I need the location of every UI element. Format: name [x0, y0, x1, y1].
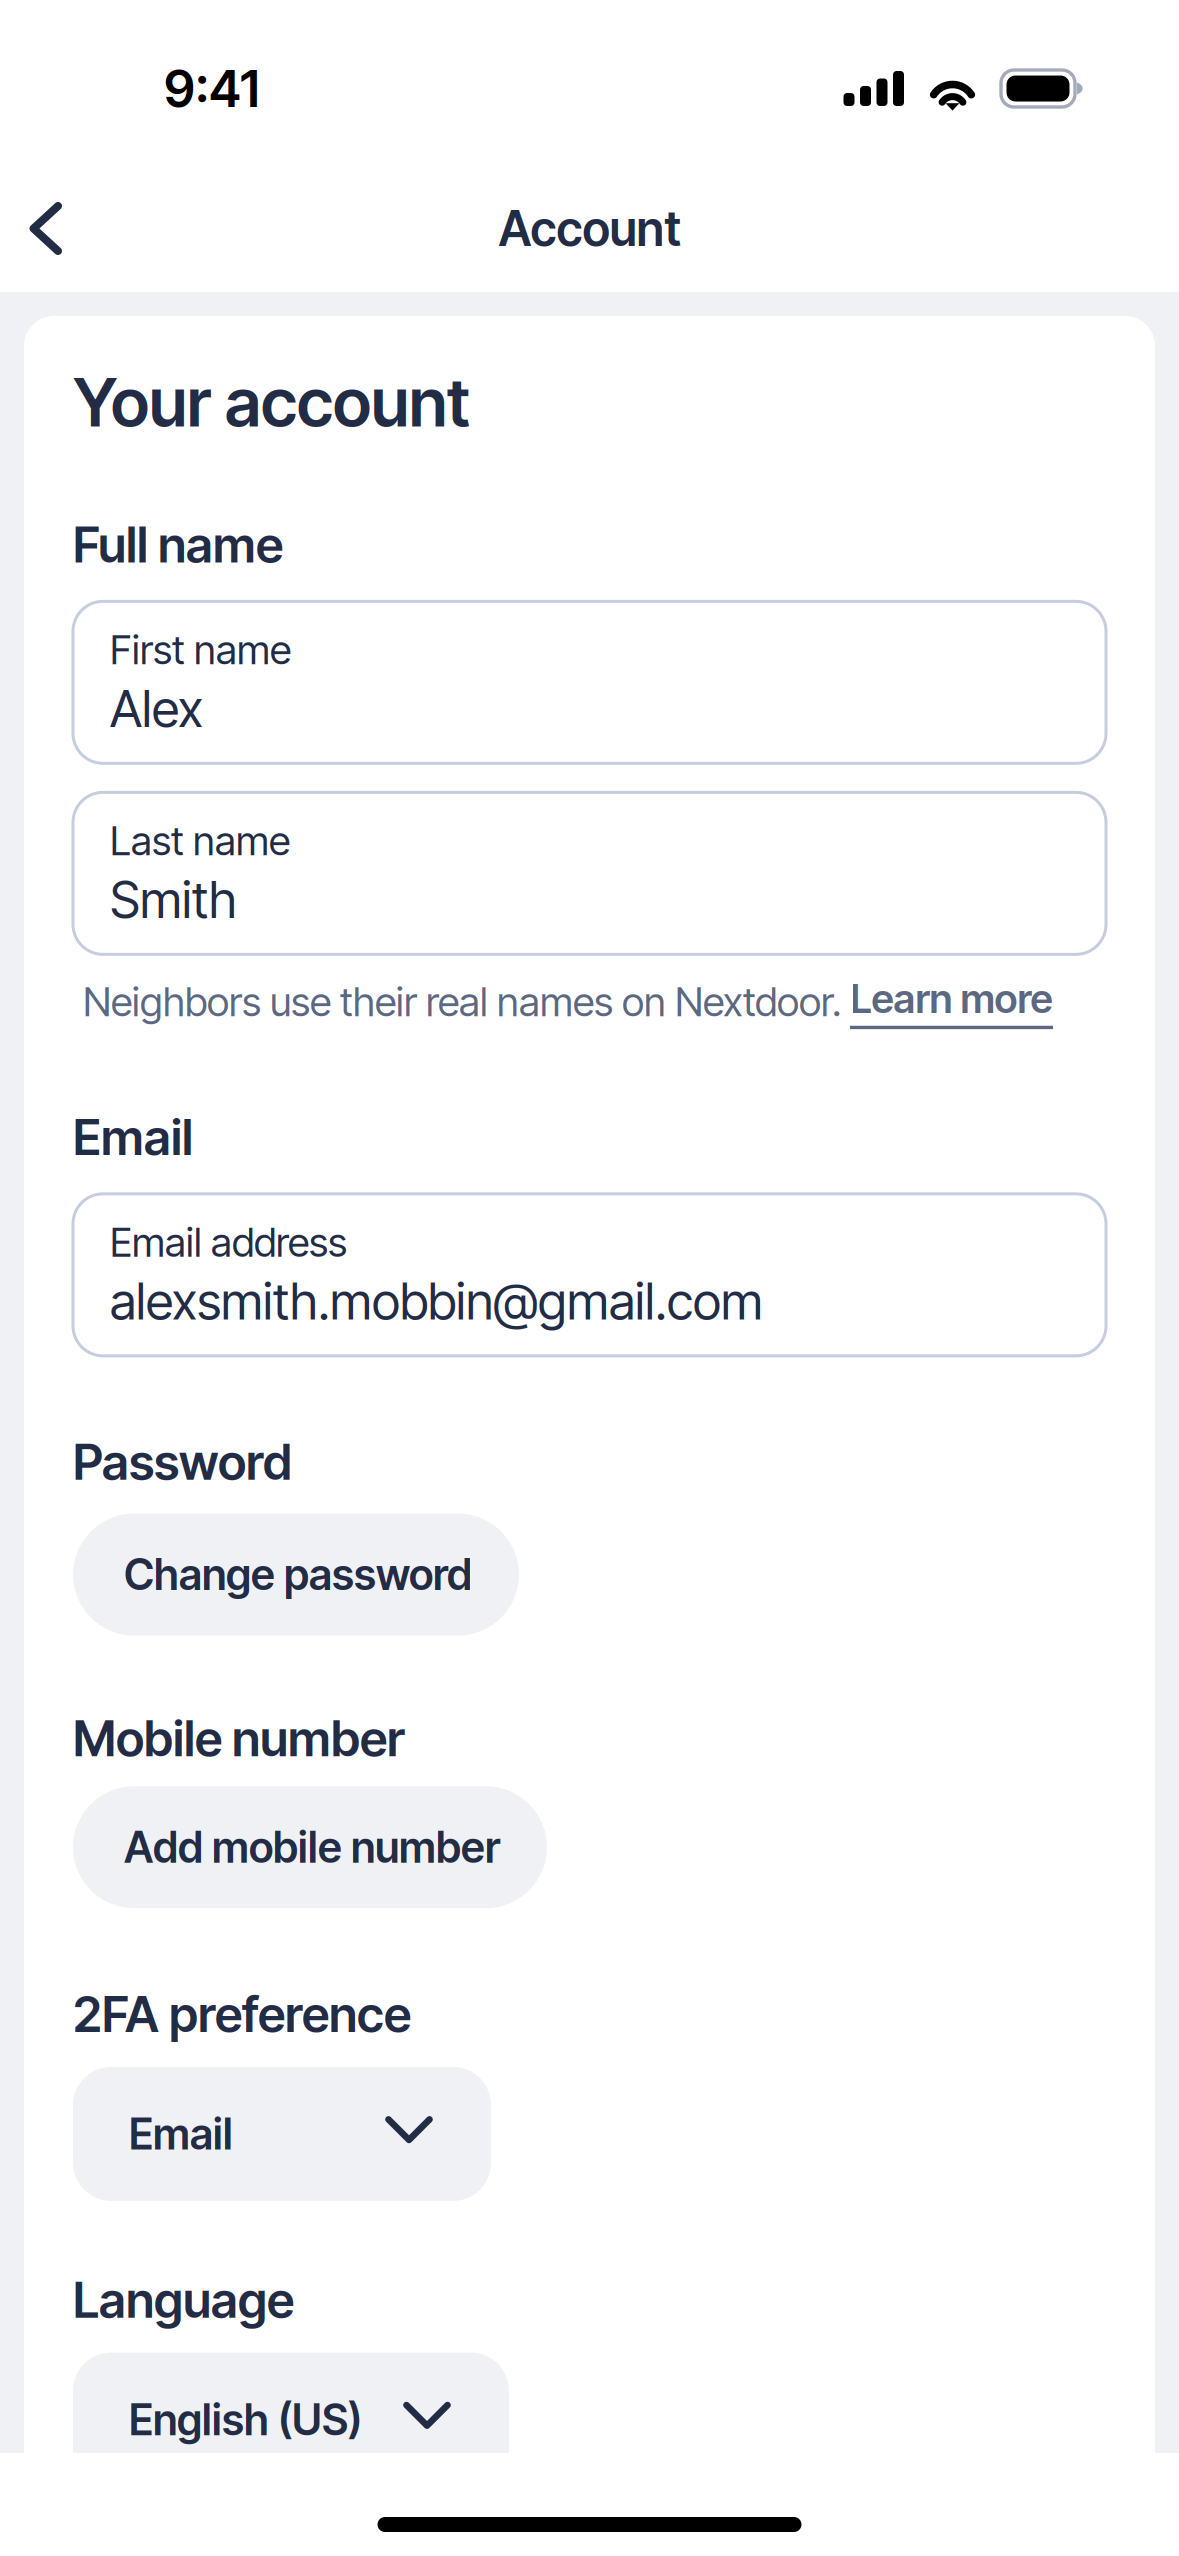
staticText: First name — [110, 625, 291, 674]
staticText: Language — [73, 2270, 294, 2330]
staticText: Neighbors use their real names on Nextdo… — [83, 978, 850, 1026]
staticText: 9:41 — [164, 58, 259, 119]
staticText: Smith — [110, 869, 237, 930]
button[interactable]: Learn more — [850, 974, 1053, 1029]
button[interactable]: English (US) — [73, 2353, 509, 2487]
staticText: Alex — [110, 678, 203, 739]
button[interactable]: Email — [73, 2067, 491, 2201]
staticText: Change password — [124, 1549, 472, 1600]
staticText: Email — [129, 2108, 233, 2160]
staticText: Account — [498, 199, 680, 258]
staticText: Last name — [110, 816, 290, 865]
staticText: Full name — [73, 515, 283, 574]
staticText: Email — [73, 1107, 193, 1167]
staticText: Add mobile number — [124, 1821, 500, 1873]
button[interactable]: Back — [0, 180, 92, 276]
button[interactable]: First name — [73, 601, 1106, 763]
staticText: Password — [73, 1432, 292, 1491]
staticText: alexsmith.mobbin@gmail.com — [110, 1270, 763, 1332]
staticText: Email address — [110, 1218, 347, 1266]
staticText: Mobile number — [73, 1708, 405, 1768]
button[interactable]: Last name — [73, 792, 1106, 954]
button[interactable]: Email address — [73, 1194, 1106, 1356]
staticText: Learn more — [850, 974, 1052, 1023]
button[interactable]: Change password — [73, 1513, 519, 1635]
button[interactable]: Add mobile number — [73, 1786, 547, 1908]
staticText: Your account — [73, 362, 470, 443]
staticText: 2FA preference — [73, 1984, 411, 2044]
staticText: English (US) — [129, 2394, 362, 2445]
